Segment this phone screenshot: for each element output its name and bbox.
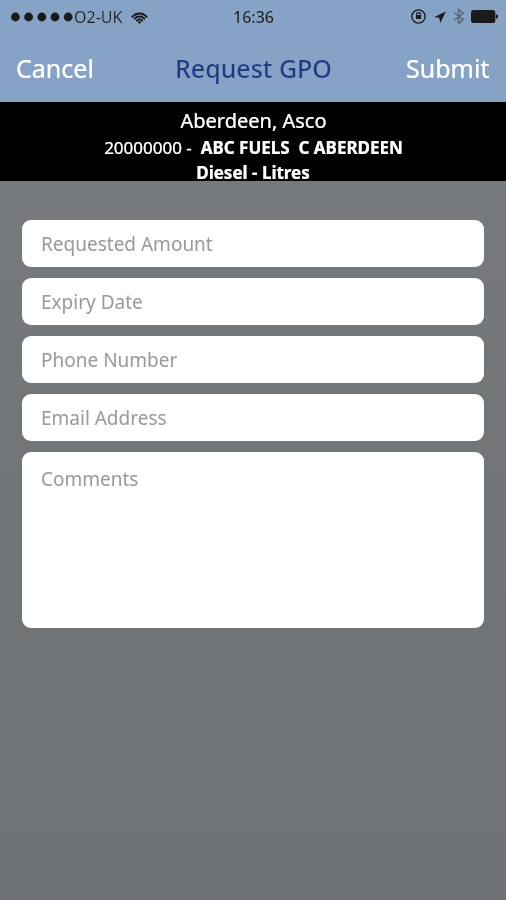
staticText: Email Address [41,405,167,431]
button[interactable]: Requested Amount [22,220,484,267]
button[interactable]: Submit [390,41,506,95]
staticText: Aberdeen, Asco [180,107,327,134]
button[interactable]: Comments [22,452,484,628]
staticText: Comments [41,466,139,492]
staticText: 16:36 [233,6,274,28]
staticText: O2-UK [74,6,123,28]
button[interactable]: Cancel [0,41,110,95]
staticText: Diesel - Litres [196,161,310,181]
button[interactable]: Email Address [22,394,484,441]
staticText: Requested Amount [41,231,213,257]
staticText: Expiry Date [41,289,143,315]
staticText: Submit [406,51,490,85]
staticText: Phone Number [41,347,178,373]
staticText: Request GPO [175,51,332,85]
staticText: Cancel [16,51,94,85]
staticText: 20000000 - ABC FUELS C ABERDEEN [104,136,403,159]
button[interactable]: Phone Number [22,336,484,383]
button[interactable]: Expiry Date [22,278,484,325]
